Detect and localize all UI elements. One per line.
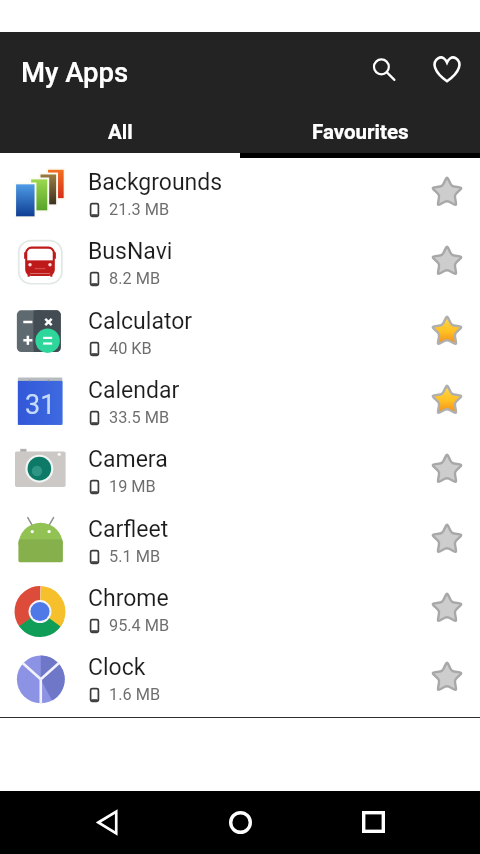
staticText: 31	[25, 389, 56, 421]
button[interactable]: Favourite	[414, 435, 480, 504]
button[interactable]: Camera	[0, 435, 480, 504]
staticText: 95.4 MB	[109, 616, 170, 635]
staticText: Carfleet	[88, 516, 169, 543]
staticText: Camera	[88, 446, 168, 473]
staticText: Backgrounds	[88, 169, 223, 196]
staticText: 19 MB	[109, 477, 156, 496]
button[interactable]: Favourites	[420, 42, 473, 95]
button[interactable]: Back	[83, 798, 131, 846]
button[interactable]: 31	[0, 366, 480, 435]
staticText: Clock	[88, 654, 146, 681]
button[interactable]: Backgrounds	[0, 158, 480, 227]
staticText: Calendar	[88, 377, 180, 404]
button[interactable]: Favourite	[414, 574, 480, 643]
button[interactable]: All	[0, 112, 240, 153]
staticText: All	[108, 120, 133, 144]
button[interactable]: Favourite	[414, 643, 480, 712]
staticText: 21.3 MB	[109, 200, 170, 219]
staticText: Chrome	[88, 585, 169, 612]
button[interactable]: Home	[216, 798, 264, 846]
staticText: Calculator	[88, 308, 193, 335]
button[interactable]: Carfleet	[0, 505, 480, 574]
button[interactable]: Favourites	[240, 112, 480, 153]
button[interactable]: Chrome	[0, 574, 480, 643]
button[interactable]: Favourite	[414, 366, 480, 435]
button[interactable]: Search	[357, 43, 410, 96]
staticText: My Apps	[21, 56, 129, 88]
staticText: 40 KB	[109, 339, 152, 358]
button[interactable]: Favourite	[414, 227, 480, 296]
staticText: BusNavi	[88, 238, 173, 265]
button[interactable]: Favourite	[414, 158, 480, 227]
staticText: 8.2 MB	[109, 269, 161, 288]
staticText: 33.5 MB	[109, 408, 170, 427]
button[interactable]: Calculator	[0, 297, 480, 366]
button[interactable]: Favourite	[414, 297, 480, 366]
button[interactable]: Recent apps	[349, 798, 397, 846]
staticText: 5.1 MB	[109, 547, 161, 566]
button[interactable]: Clock	[0, 643, 480, 712]
button[interactable]: BusNavi	[0, 227, 480, 296]
staticText: 1.6 MB	[109, 685, 161, 704]
staticText: Favourites	[312, 120, 409, 144]
button[interactable]: Favourite	[414, 505, 480, 574]
